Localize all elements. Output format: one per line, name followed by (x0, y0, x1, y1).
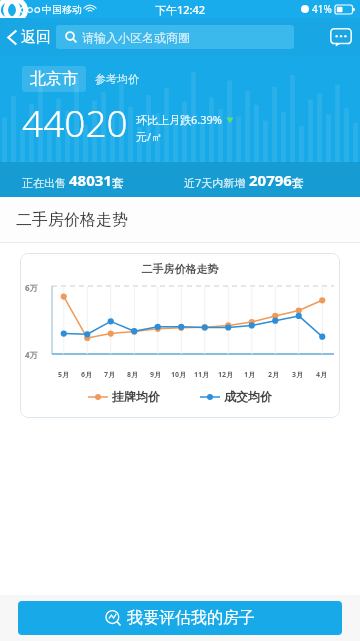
staticText: 套 (292, 175, 304, 190)
staticText: 我要评估我的房子 (127, 608, 255, 628)
button[interactable]: Messages (322, 18, 360, 56)
staticText: 套 (112, 175, 124, 190)
staticText: 二手房价格走势 (20, 262, 340, 276)
staticText: 元/㎡ (136, 129, 163, 144)
staticText: 5月 (58, 370, 70, 380)
button[interactable]: 成交均价 (200, 389, 272, 404)
staticText: 挂牌均价 (112, 389, 160, 404)
staticText: 41% (312, 2, 332, 16)
staticText: 6月 (81, 370, 93, 380)
button[interactable]: 北京市 (22, 66, 86, 92)
staticText: 近7天内新增 (184, 175, 246, 190)
staticText: 8月 (127, 370, 139, 380)
button[interactable]: 返回 (0, 18, 57, 56)
staticText: 中国移动 (42, 3, 82, 16)
staticText: 11月 (194, 370, 210, 380)
button[interactable]: 请输入小区名或商圈 (56, 25, 294, 49)
staticText: 4万 (25, 349, 38, 360)
staticText: 正在出售 (22, 176, 66, 190)
staticText: 6万 (25, 282, 38, 293)
staticText: 3月 (292, 370, 304, 380)
staticText: 成交均价 (224, 389, 272, 404)
staticText: 2月 (268, 370, 280, 380)
staticText: 48031 (69, 170, 112, 190)
staticText: 二手房价格走势 (16, 210, 128, 230)
staticText: 4月 (316, 370, 328, 380)
staticText: 9月 (150, 370, 162, 380)
staticText: 北京市 (30, 69, 78, 89)
staticText: 20796 (249, 170, 292, 190)
staticText: 44020 (22, 97, 128, 147)
staticText: 10月 (171, 370, 187, 380)
staticText: 返回 (21, 28, 51, 47)
button[interactable]: 我要评估我的房子 (18, 601, 342, 635)
staticText: 请输入小区名或商圈 (82, 30, 190, 45)
staticText: 12月 (218, 370, 234, 380)
button[interactable]: 挂牌均价 (88, 389, 160, 404)
staticText: 1月 (244, 370, 256, 380)
staticText: 参考均价 (95, 72, 139, 86)
staticText: 下午12:42 (155, 2, 206, 17)
staticText: 7月 (104, 370, 116, 380)
staticText: 环比上月跌6.39% (136, 112, 222, 127)
